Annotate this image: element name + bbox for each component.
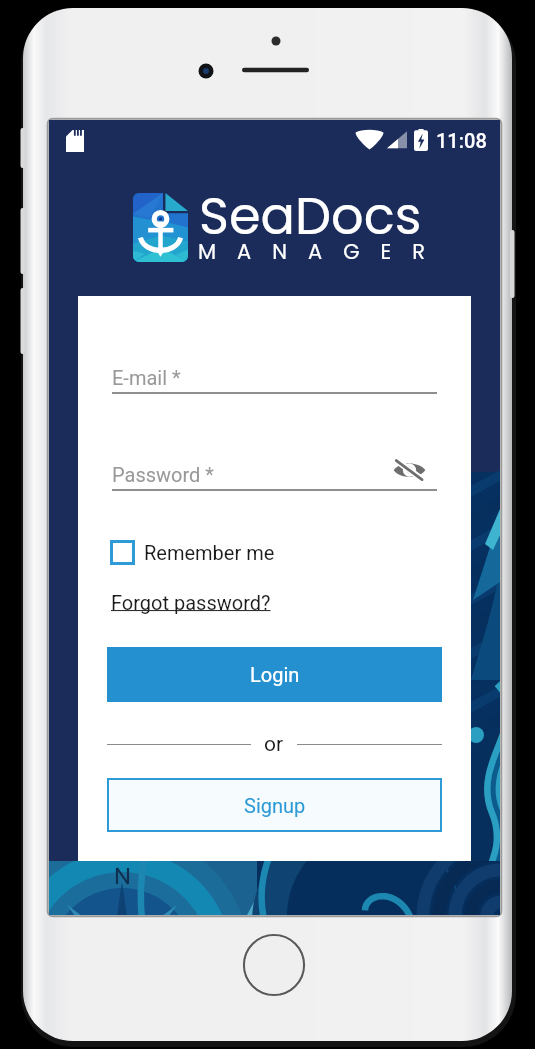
staticText: or [264,732,284,757]
button[interactable]: Forgot password? [111,591,271,614]
staticText: M A N A G E R [198,237,433,266]
staticText: SeaDocs [199,180,422,251]
staticText: Forgot password? [111,591,271,614]
staticText: Remember me [144,541,275,564]
staticText: 11:08 [436,129,487,152]
staticText: Password * [112,463,214,486]
button[interactable]: Signup [107,778,442,832]
staticText: Signup [244,794,306,817]
button[interactable]: Toggle password visibility [390,457,428,481]
button[interactable]: Remember me [110,540,275,565]
button[interactable]: Login [107,647,442,702]
staticText: E-mail * [112,366,181,389]
staticText: Login [250,663,300,686]
